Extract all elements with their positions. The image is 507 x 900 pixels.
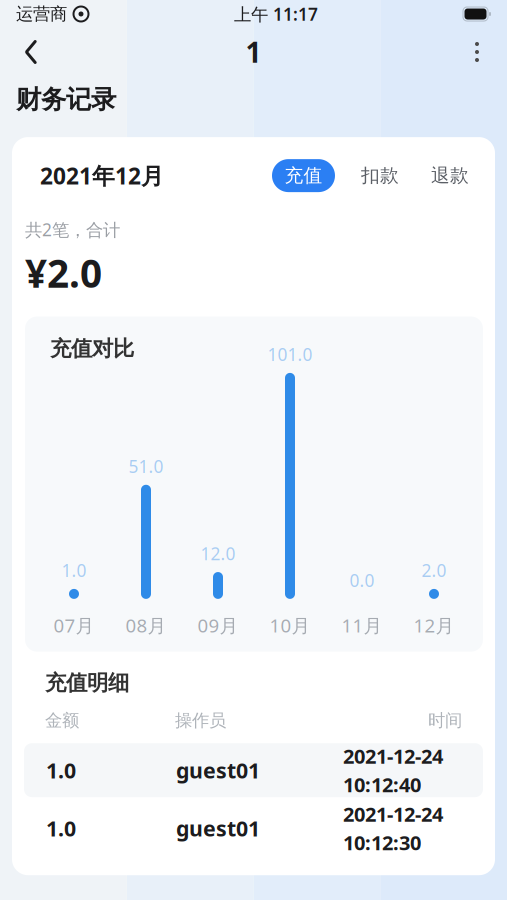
staticText: 退款 bbox=[431, 164, 469, 187]
staticText: 金额 bbox=[45, 710, 79, 731]
button[interactable]: 扣款 bbox=[349, 159, 411, 192]
staticText: 1.0 bbox=[61, 559, 86, 582]
staticText: 2021年12月 bbox=[40, 161, 164, 191]
staticText: 09月 bbox=[197, 613, 238, 638]
staticText: 10月 bbox=[269, 613, 310, 638]
staticText: 07月 bbox=[53, 613, 94, 638]
staticText: 上午 11:17 bbox=[234, 2, 318, 25]
button[interactable]: 充值 bbox=[272, 159, 335, 192]
staticText: 充值 bbox=[284, 164, 322, 187]
staticText: 12月 bbox=[413, 613, 454, 638]
button[interactable]: 1.0 bbox=[24, 801, 483, 855]
staticText: ¥2.0 bbox=[25, 247, 102, 298]
staticText: 10:12:30 bbox=[343, 829, 421, 856]
button[interactable]: 退款 bbox=[419, 159, 481, 192]
staticText: 2.0 bbox=[421, 559, 446, 582]
staticText: 0.0 bbox=[349, 569, 374, 592]
staticText: 充值明细 bbox=[45, 670, 129, 696]
staticText: 1.0 bbox=[46, 756, 76, 784]
staticText: 财务记录 bbox=[16, 84, 116, 115]
staticText: 2021-12-24 bbox=[343, 801, 443, 827]
button[interactable]: More options bbox=[455, 29, 499, 75]
button[interactable]: 1.0 bbox=[24, 743, 483, 797]
staticText: 101.0 bbox=[267, 343, 312, 366]
staticText: guest01 bbox=[176, 756, 260, 784]
staticText: 12.0 bbox=[200, 542, 235, 565]
staticText: 充值对比 bbox=[50, 335, 134, 362]
staticText: 51.0 bbox=[128, 455, 163, 478]
staticText: 08月 bbox=[125, 613, 166, 638]
staticText: 2021-12-24 bbox=[343, 743, 443, 769]
staticText: 11月 bbox=[341, 613, 382, 638]
staticText: 操作员 bbox=[175, 710, 226, 731]
staticText: 共2笔，合计 bbox=[25, 218, 120, 241]
staticText: 10:12:40 bbox=[343, 771, 421, 798]
staticText: 运营商 bbox=[16, 3, 67, 25]
button[interactable]: Back bbox=[8, 29, 54, 75]
staticText: 扣款 bbox=[361, 164, 399, 187]
staticText: guest01 bbox=[176, 814, 260, 842]
staticText: 1 bbox=[245, 33, 261, 71]
staticText: 时间 bbox=[428, 710, 462, 731]
staticText: 1.0 bbox=[46, 814, 76, 842]
